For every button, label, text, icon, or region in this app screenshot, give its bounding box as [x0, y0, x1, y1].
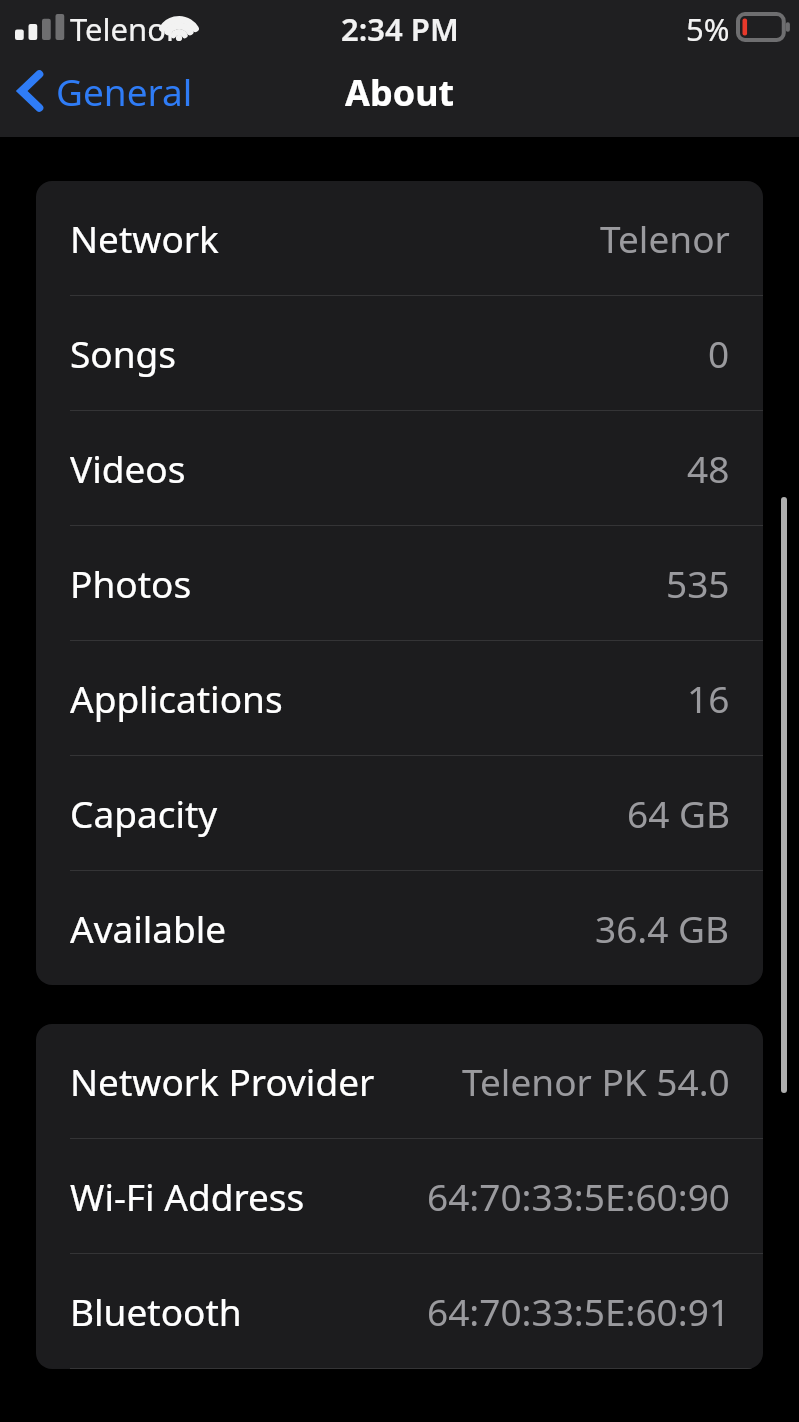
staticText: 36.4 GB: [595, 903, 730, 953]
button[interactable]: Network Provider: [36, 1024, 763, 1138]
staticText: 5%: [686, 8, 730, 50]
button[interactable]: Songs: [36, 296, 763, 410]
staticText: 64:70:33:5E:60:91: [427, 1286, 730, 1336]
staticText: 64 GB: [627, 788, 730, 838]
staticText: 16: [687, 673, 730, 723]
staticText: Songs: [70, 328, 177, 378]
staticText: Videos: [70, 443, 186, 493]
staticText: 48: [687, 443, 730, 493]
staticText: Telenor: [70, 8, 179, 50]
staticText: Telenor PK 54.0: [462, 1056, 730, 1106]
button[interactable]: General: [8, 62, 207, 120]
button[interactable]: Applications: [36, 641, 763, 755]
staticText: Capacity: [70, 788, 218, 838]
staticText: Available: [70, 903, 227, 953]
staticText: 535: [666, 558, 730, 608]
button[interactable]: Videos: [36, 411, 763, 525]
staticText: Wi-Fi Address: [70, 1171, 305, 1221]
staticText: 2:34 PM: [341, 8, 459, 50]
staticText: Applications: [70, 673, 283, 723]
button[interactable]: Wi-Fi Address: [36, 1139, 763, 1253]
staticText: 64:70:33:5E:60:90: [427, 1171, 730, 1221]
staticText: General: [56, 66, 193, 116]
staticText: About: [345, 68, 455, 117]
staticText: Telenor: [600, 213, 730, 263]
button[interactable]: Photos: [36, 526, 763, 640]
button[interactable]: Network: [36, 181, 763, 295]
staticText: 0: [708, 328, 730, 378]
staticText: Network: [70, 213, 219, 263]
button[interactable]: Capacity: [36, 756, 763, 870]
button[interactable]: Bluetooth: [36, 1254, 763, 1368]
staticText: Network Provider: [70, 1056, 375, 1106]
button[interactable]: Available: [36, 871, 763, 985]
staticText: Bluetooth: [70, 1286, 242, 1336]
staticText: Photos: [70, 558, 192, 608]
